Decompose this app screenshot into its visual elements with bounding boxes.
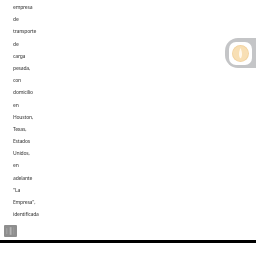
staticText: de — [13, 16, 19, 23]
staticText: adelante — [13, 175, 33, 182]
staticText: Estados — [13, 138, 31, 145]
staticText: con — [13, 77, 21, 84]
staticText: Texas, — [13, 126, 27, 133]
staticText: Empresa", — [13, 199, 36, 206]
staticText: en — [13, 162, 19, 169]
staticText: Houston, — [13, 114, 34, 121]
staticText: en — [13, 102, 19, 109]
staticText: identificada — [13, 211, 39, 218]
staticText: "La — [13, 187, 21, 194]
button[interactable]: Assistant — [225, 38, 256, 68]
staticText: carga — [13, 53, 26, 60]
staticText: domicilio — [13, 89, 33, 96]
button[interactable]: Image placeholder — [4, 225, 17, 237]
staticText: pesada, — [13, 65, 31, 72]
staticText: Unidos, — [13, 150, 30, 157]
staticText: de — [13, 41, 19, 48]
staticText: transporte — [13, 28, 37, 35]
staticText: empresa — [13, 4, 33, 11]
